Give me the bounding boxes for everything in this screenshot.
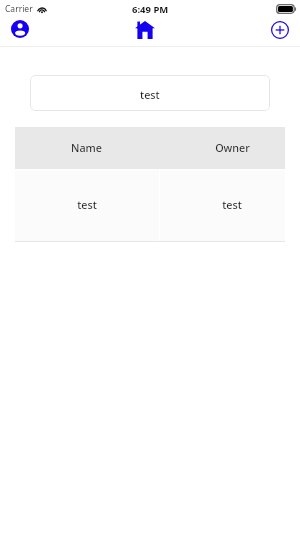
button[interactable]: test xyxy=(30,75,270,111)
button[interactable]: Account xyxy=(8,17,32,41)
button[interactable]: Add xyxy=(268,18,292,42)
staticText: Owner xyxy=(215,140,250,155)
staticText: 6:49 PM xyxy=(132,3,169,16)
staticText: Carrier xyxy=(5,3,33,15)
staticText: test xyxy=(222,197,242,212)
staticText: test xyxy=(77,197,97,212)
button[interactable]: test xyxy=(47,168,127,240)
staticText: test xyxy=(140,87,160,102)
button[interactable]: test xyxy=(192,168,272,240)
staticText: Name xyxy=(71,140,102,155)
button[interactable]: Home xyxy=(133,18,157,42)
